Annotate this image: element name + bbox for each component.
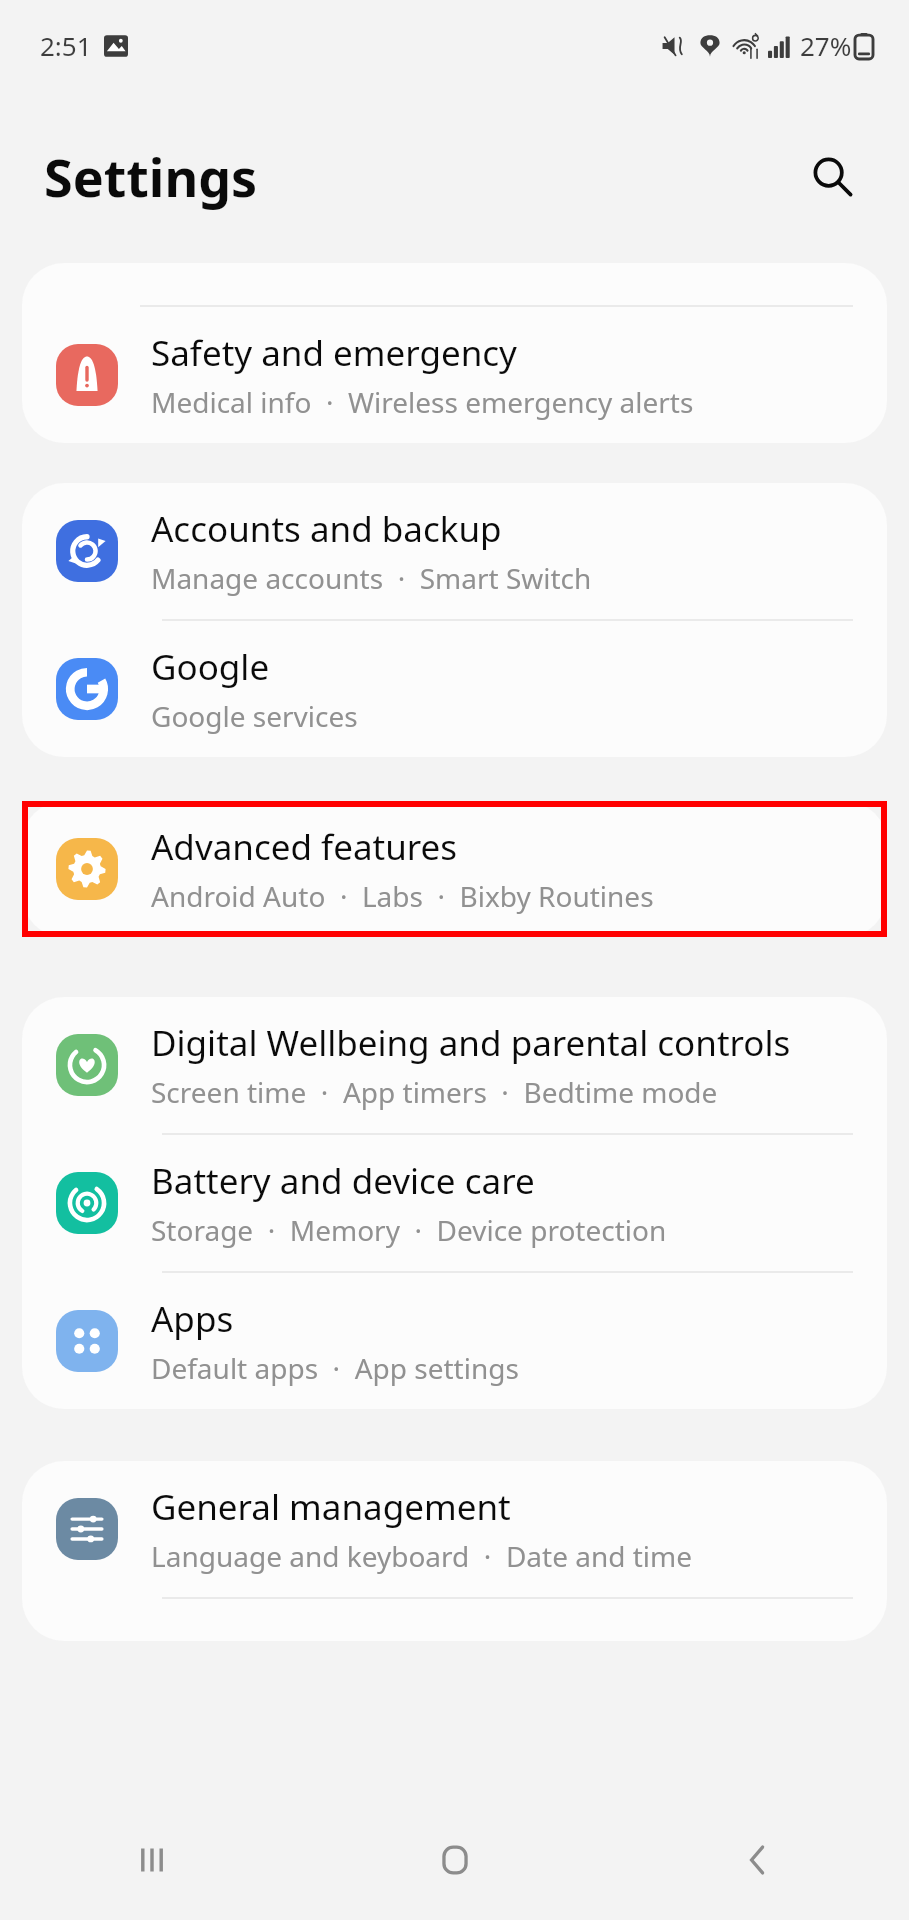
button[interactable]: Home bbox=[303, 1800, 606, 1920]
staticText: 2:51 bbox=[40, 28, 92, 63]
staticText: Battery and device care bbox=[151, 1157, 535, 1205]
staticText: Settings bbox=[44, 141, 258, 212]
button[interactable]: General management bbox=[22, 1461, 887, 1597]
staticText: Android Auto · Labs · Bixby Routines bbox=[151, 877, 654, 915]
button[interactable]: Accounts and backup bbox=[22, 483, 887, 619]
staticText: 27% bbox=[800, 28, 852, 63]
staticText: Apps bbox=[151, 1295, 234, 1343]
button[interactable]: Digital Wellbeing and parental controls bbox=[22, 997, 887, 1133]
staticText: Safety and emergency bbox=[151, 329, 517, 377]
staticText: Screen time · App timers · Bedtime mode bbox=[151, 1073, 718, 1111]
staticText: Default apps · App settings bbox=[151, 1349, 519, 1387]
staticText: Storage · Memory · Device protection bbox=[151, 1211, 667, 1249]
button[interactable]: Recents bbox=[0, 1800, 303, 1920]
staticText: Language and keyboard · Date and time bbox=[151, 1537, 693, 1575]
button[interactable]: Back bbox=[606, 1800, 909, 1920]
button[interactable]: Battery and device care bbox=[22, 1135, 887, 1271]
staticText: Manage accounts · Smart Switch bbox=[151, 559, 592, 597]
staticText: General management bbox=[151, 1483, 511, 1531]
button[interactable]: Safety and emergency bbox=[22, 307, 887, 443]
staticText: Google services bbox=[151, 697, 358, 735]
staticText: Google bbox=[151, 643, 270, 691]
staticText: Digital Wellbeing and parental controls bbox=[151, 1019, 791, 1067]
button[interactable]: Advanced features bbox=[22, 801, 887, 937]
button[interactable]: Apps bbox=[22, 1273, 887, 1409]
button[interactable]: Search bbox=[785, 129, 881, 225]
staticText: Accounts and backup bbox=[151, 505, 502, 553]
staticText: Advanced features bbox=[151, 823, 458, 871]
staticText: Medical info · Wireless emergency alerts bbox=[151, 383, 694, 421]
button[interactable]: Google bbox=[22, 621, 887, 757]
